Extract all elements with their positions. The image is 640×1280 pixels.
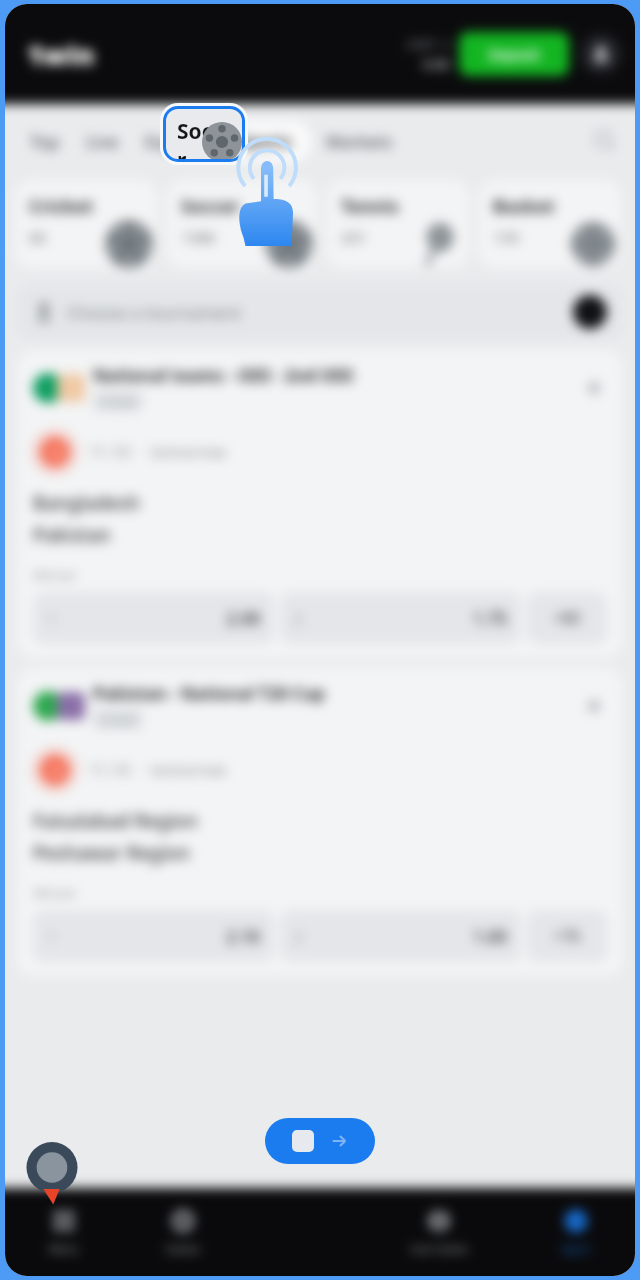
button[interactable]: Deposit [459,32,569,76]
staticText: Peshawar Region [33,840,191,866]
button[interactable]: +76 [527,910,607,962]
button[interactable]: Soccer [167,180,317,268]
button[interactable]: 2 [280,592,521,644]
button[interactable]: 1 [33,592,274,644]
staticText: 11.10 · tomorrow [89,759,226,781]
staticText: Bangladesh [33,490,140,516]
staticText: Cricket [100,394,136,409]
staticText: 201 [341,227,367,247]
button[interactable]: Support chat [23,1142,81,1200]
staticText: Faisalabad Region [33,808,198,834]
staticText: 2.08 [226,607,260,630]
button[interactable]: Betslip [265,1118,375,1164]
staticText: 0.00 [423,55,449,73]
staticText: Soccer [177,117,242,159]
staticText: USDT ▾ [406,36,449,52]
staticText: Cricket [100,712,136,727]
button[interactable]: Cricket [15,180,157,268]
button[interactable]: +80 [527,592,607,644]
staticText: Live Casino [410,1241,468,1256]
staticText: Sports [239,130,293,153]
button[interactable]: Casino [123,1188,242,1276]
button[interactable]: Menu [5,1188,123,1276]
staticText: Sport [562,1241,590,1256]
staticText: National teams - ODI - 2nd ODI [93,364,354,387]
staticText: Basket [493,194,555,219]
button[interactable]: More [581,375,607,401]
staticText: Cricket [29,194,93,219]
staticText: Top [30,130,60,153]
button[interactable]: Profile [581,34,621,74]
staticText: 1.60 [473,925,507,948]
button[interactable]: USDT ▾ [406,36,459,73]
staticText: 1386 [181,227,216,247]
button[interactable]: Soccer [166,109,242,159]
staticText: Menu [49,1241,79,1256]
button[interactable]: Live Casino [361,1188,516,1276]
staticText: Esports [145,130,206,153]
button[interactable]: Tennis [327,180,469,268]
button[interactable]: Sport [516,1188,635,1276]
staticText: Pakistan [33,522,111,548]
button[interactable]: Esports [134,121,217,162]
button[interactable]: National teams - ODI - 2nd ODI [17,350,623,658]
staticText: 1win [27,36,95,73]
button[interactable]: 2 [280,910,521,962]
staticText: Winner [33,566,78,584]
staticText: Choose a tournament [67,301,242,324]
staticText: 66 [29,227,47,247]
staticText: Winner [33,884,78,902]
button[interactable]: Basket [479,180,621,268]
button[interactable]: Choose a tournament [17,284,623,340]
staticText: Tennis [341,194,399,219]
button[interactable]: Live [75,121,130,162]
staticText: 11.10 · tomorrow [89,441,226,463]
button[interactable]: 1 [33,910,274,962]
staticText: +80 [553,607,581,629]
button[interactable]: Markets [315,121,404,162]
staticText: Live [86,130,119,153]
staticText: Casino [165,1241,200,1256]
staticText: 139 [493,227,519,247]
staticText: 2.16 [226,925,260,948]
button[interactable]: More [581,693,607,719]
staticText: Deposit [488,45,541,64]
staticText: Soccer [181,194,240,219]
staticText: 1.75 [473,607,507,630]
staticText: Pakistan - National T20 Cup [93,682,325,705]
button[interactable]: Top [19,121,71,162]
staticText: +76 [553,925,581,947]
button[interactable]: Sports [221,121,311,162]
button[interactable]: Search [583,119,627,163]
button[interactable]: Pakistan - National T20 Cup [17,668,623,976]
staticText: Markets [326,130,393,153]
